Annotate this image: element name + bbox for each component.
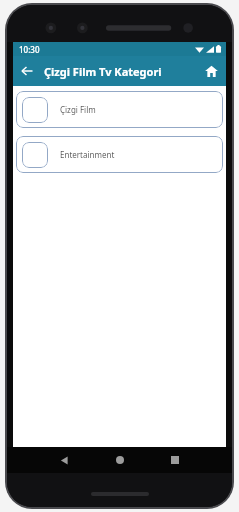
button[interactable]: Home (107, 447, 133, 473)
button[interactable]: Recent apps (162, 447, 188, 473)
staticText: Çizgi Film Tv Kategori (44, 64, 162, 79)
staticText: 10:30 (19, 44, 40, 55)
staticText: Entertainment (60, 149, 115, 160)
button[interactable]: Back (51, 447, 77, 473)
staticText: Çizgi Film (60, 104, 96, 115)
button[interactable]: Home (199, 59, 223, 83)
button[interactable]: Back (15, 59, 39, 83)
button[interactable]: Entertainment (16, 136, 223, 173)
button[interactable]: Çizgi Film (16, 91, 223, 128)
